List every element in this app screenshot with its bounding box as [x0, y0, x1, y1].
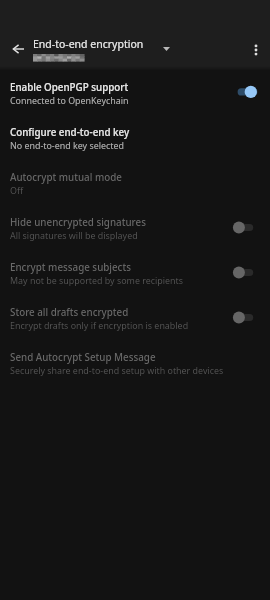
- staticText: Enable OpenPGP support: [10, 81, 129, 94]
- staticText: Securely share end-to-end setup with oth…: [10, 364, 224, 376]
- staticText: May not be supported by some recipients: [10, 274, 184, 286]
- button[interactable]: Autocrypt mutual mode: [0, 161, 270, 206]
- button[interactable]: Disabled: [228, 262, 262, 286]
- staticText: Send Autocrypt Setup Message: [10, 351, 156, 364]
- staticText: Encrypt drafts only if encryption is ena…: [10, 319, 189, 331]
- button[interactable]: Hide unencrypted signatures: [0, 206, 270, 251]
- button[interactable]: Navigate up: [3, 34, 33, 64]
- button[interactable]: Disabled: [228, 217, 262, 241]
- button[interactable]: Disabled: [228, 307, 262, 331]
- button[interactable]: Enable OpenPGP support: [0, 71, 270, 116]
- button[interactable]: Enabled: [228, 82, 262, 106]
- button[interactable]: Encrypt message subjects: [0, 251, 270, 296]
- staticText: End-to-end encryption: [33, 37, 144, 51]
- button[interactable]: Configure end-to-end key: [0, 116, 270, 161]
- staticText: Off: [10, 184, 24, 196]
- staticText: Configure end-to-end key: [10, 126, 130, 139]
- staticText: No end-to-end key selected: [10, 139, 124, 151]
- staticText: Connected to OpenKeychain: [10, 94, 129, 106]
- staticText: Hide unencrypted signatures: [10, 216, 146, 229]
- staticText: Encrypt message subjects: [10, 261, 131, 274]
- button[interactable]: More options: [242, 36, 270, 64]
- staticText: Store all drafts encrypted: [10, 306, 129, 319]
- staticText: All signatures will be displayed: [10, 229, 138, 241]
- button[interactable]: Store all drafts encrypted: [0, 296, 270, 341]
- button[interactable]: Expand account list: [157, 40, 175, 58]
- button[interactable]: Send Autocrypt Setup Message: [0, 341, 270, 386]
- staticText: Autocrypt mutual mode: [10, 171, 122, 184]
